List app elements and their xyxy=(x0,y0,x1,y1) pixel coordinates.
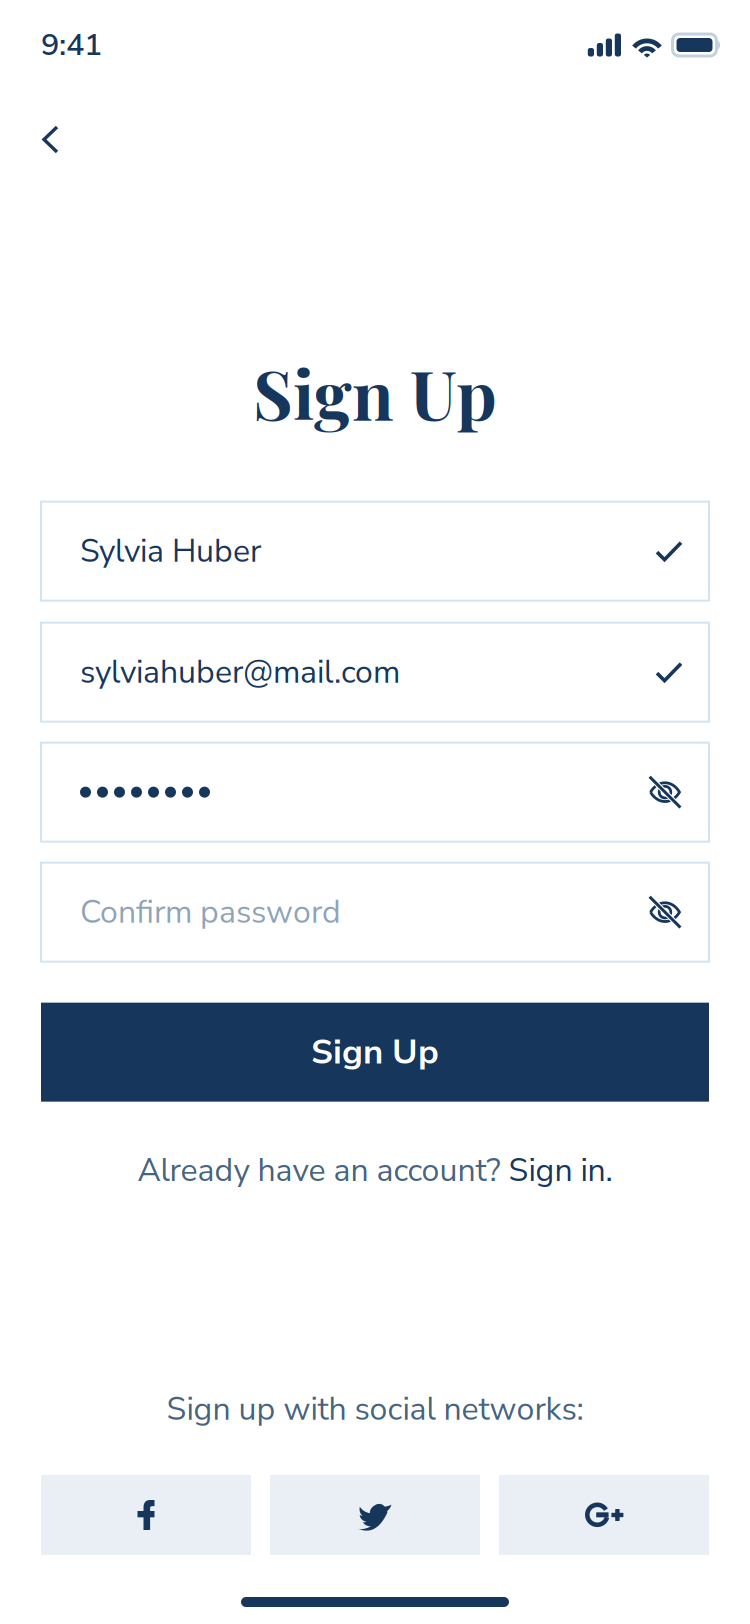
staticText: Already have an account? xyxy=(137,1149,508,1192)
button[interactable]: Show password xyxy=(649,776,681,808)
button[interactable]: Show confirm password xyxy=(649,896,681,928)
button[interactable]: Back xyxy=(19,108,83,172)
staticText: 9:41 xyxy=(41,24,102,66)
staticText: sylviahuber@mail.com xyxy=(80,650,400,694)
button[interactable]: Sign up with Facebook xyxy=(41,1475,251,1555)
staticText: Sign in. xyxy=(508,1149,612,1192)
staticText: Sign Up xyxy=(253,347,497,438)
staticText: Sign Up xyxy=(311,1028,439,1076)
button[interactable]: Sign Up xyxy=(41,1003,709,1102)
button[interactable]: Already have an account? xyxy=(137,1149,612,1192)
button[interactable]: Sign up with Twitter xyxy=(270,1475,480,1555)
staticText: Confirm password xyxy=(80,890,341,934)
button[interactable]: Sign up with Google Plus xyxy=(499,1475,709,1555)
staticText: Sylvia Huber xyxy=(80,529,261,573)
staticText: Sign up with social networks: xyxy=(166,1387,583,1431)
